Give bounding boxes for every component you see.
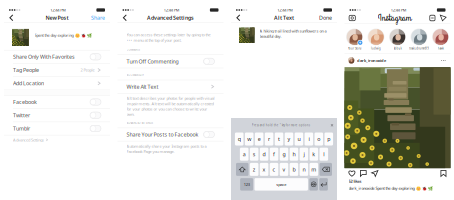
button[interactable]: z — [250, 163, 258, 176]
button[interactable]: w — [245, 132, 253, 145]
staticText: Twitter — [13, 112, 30, 119]
staticText: 12:44 PM — [50, 7, 66, 13]
button[interactable]: Write Alt Text — [117, 80, 223, 93]
button[interactable]: Direct messages — [440, 15, 450, 21]
staticText: Share — [91, 14, 105, 21]
staticText: q — [238, 135, 241, 143]
staticText: Tag People — [13, 66, 39, 74]
button[interactable]: 123 — [240, 178, 253, 191]
button[interactable]: Tumblr — [4, 122, 110, 135]
staticText: r — [268, 135, 270, 143]
button[interactable]: Share — [371, 170, 378, 177]
staticText: b — [292, 166, 295, 173]
staticText: COMMENTS — [126, 48, 139, 51]
button[interactable]: Delete — [319, 163, 332, 176]
button[interactable]: k — [310, 148, 318, 161]
button[interactable]: Back — [4, 14, 19, 21]
staticText: k — [312, 151, 315, 158]
button[interactable]: Comment — [360, 170, 367, 177]
staticText: 2 People — [80, 67, 94, 73]
staticText: j — [303, 151, 304, 158]
staticText: t — [278, 135, 280, 143]
button[interactable]: x — [260, 163, 268, 176]
staticText: space — [276, 182, 286, 187]
button[interactable]: a — [240, 148, 248, 161]
staticText: z — [253, 166, 256, 173]
button[interactable]: Turn Off Commenting — [117, 55, 223, 68]
staticText: l — [323, 151, 324, 158]
button[interactable]: v — [280, 163, 288, 176]
button[interactable]: q — [235, 132, 243, 145]
button[interactable]: Add Location — [4, 77, 110, 90]
staticText: Share Your Posts to Facebook — [126, 131, 198, 138]
button[interactable]: IGTV — [429, 15, 440, 21]
button[interactable]: i — [305, 132, 313, 145]
button[interactable]: b — [290, 163, 298, 176]
button[interactable]: p — [324, 132, 333, 145]
button[interactable]: travis.drumm99 — [409, 28, 429, 50]
staticText: ludwig — [371, 47, 381, 50]
button[interactable]: Done — [314, 14, 337, 21]
staticText: New Post — [45, 14, 68, 21]
staticText: u — [297, 135, 300, 143]
button[interactable]: o — [314, 132, 323, 145]
button[interactable]: space — [254, 178, 308, 191]
staticText: You can access these settings later by g… — [126, 32, 210, 43]
button[interactable]: ludwig — [366, 28, 386, 50]
staticText: p — [327, 135, 330, 143]
button[interactable]: Share — [86, 14, 110, 21]
staticText: d — [263, 151, 266, 158]
staticText: Done — [319, 14, 332, 21]
button[interactable]: abby.k — [388, 28, 407, 50]
staticText: Write Alt Text — [126, 83, 158, 90]
button[interactable]: Tag People — [4, 64, 110, 76]
staticText: i — [308, 135, 309, 143]
button[interactable]: u — [295, 132, 303, 145]
button[interactable]: j — [300, 148, 308, 161]
button[interactable]: s — [250, 148, 258, 161]
staticText: n — [302, 166, 305, 173]
button[interactable]: Camera — [344, 14, 360, 21]
staticText: A hiking trail lined with sunflowers on … — [259, 28, 326, 39]
button[interactable]: m — [310, 163, 318, 176]
button[interactable]: Back — [231, 14, 246, 21]
button[interactable]: Advanced Settings — [4, 135, 110, 144]
button[interactable]: hawk — [431, 28, 450, 50]
button[interactable]: Facebook — [4, 96, 110, 108]
staticText: abby.k — [393, 47, 401, 50]
staticText: 12:44 PM — [277, 7, 293, 13]
button[interactable]: dark_ironoxide — [344, 54, 450, 67]
button[interactable]: l — [319, 148, 328, 161]
staticText: Alt text describes your photos for peopl… — [126, 96, 214, 117]
button[interactable]: d — [260, 148, 268, 161]
staticText: Facebook — [13, 98, 37, 106]
button[interactable]: Back — [117, 14, 132, 21]
button[interactable]: y — [285, 132, 293, 145]
button[interactable]: Share Your Posts to Facebook — [117, 128, 223, 141]
button[interactable]: f — [270, 148, 278, 161]
button[interactable]: Next keyboard — [309, 178, 318, 191]
staticText: 52 likes — [348, 179, 361, 184]
button[interactable]: Your Story — [345, 28, 364, 50]
staticText: Alt Text — [274, 14, 294, 21]
button[interactable]: c — [270, 163, 278, 176]
button[interactable]: Save — [440, 170, 446, 177]
button[interactable]: t — [275, 132, 283, 145]
button[interactable]: Return — [319, 178, 328, 191]
staticText: 12:44 PM — [391, 7, 407, 13]
staticText: h — [292, 151, 295, 158]
button[interactable]: r — [265, 132, 273, 145]
staticText: dark_ironoxide Spent the day exploring 🌼… — [348, 186, 432, 191]
button[interactable]: h — [290, 148, 298, 161]
button[interactable]: Like — [348, 170, 355, 177]
staticText: ADVANCED SETTINGS — [126, 121, 152, 125]
staticText: 12:44 PM — [164, 7, 180, 13]
button[interactable]: n — [300, 163, 308, 176]
button[interactable]: Share Only With Favorites — [4, 50, 110, 63]
button[interactable]: Twitter — [4, 109, 110, 122]
staticText: c — [273, 166, 276, 173]
button[interactable]: g — [280, 148, 288, 161]
button[interactable]: Shift — [236, 163, 248, 176]
button[interactable]: e — [255, 132, 263, 145]
staticText: Press and hold the " key for more option… — [252, 123, 310, 127]
